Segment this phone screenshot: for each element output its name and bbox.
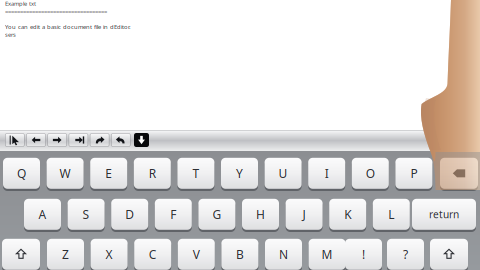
button[interactable]: J <box>286 197 323 232</box>
button[interactable]: Hide keyboard <box>133 132 149 147</box>
button[interactable]: W <box>47 156 84 191</box>
button[interactable]: Y <box>221 156 258 191</box>
staticText: ? <box>403 246 408 262</box>
staticText: W <box>60 165 71 181</box>
button[interactable]: E <box>90 156 127 191</box>
button[interactable]: Redo <box>90 133 110 147</box>
staticText: M <box>322 246 333 262</box>
button[interactable]: return <box>412 197 476 232</box>
button[interactable]: T <box>177 156 214 191</box>
button[interactable]: Move left <box>26 133 46 147</box>
staticText: V <box>193 246 200 262</box>
button[interactable]: I <box>308 156 345 191</box>
button[interactable]: Z <box>47 237 84 270</box>
staticText: F <box>170 206 176 222</box>
staticText: K <box>344 206 351 222</box>
button[interactable]: N <box>265 237 302 270</box>
staticText: O <box>366 165 375 181</box>
button[interactable]: Select text <box>5 133 25 147</box>
button[interactable]: D <box>111 197 148 232</box>
button[interactable]: X <box>91 237 128 270</box>
button[interactable]: S <box>68 197 105 232</box>
staticText: ================================== <box>5 8 107 15</box>
button[interactable]: Undo <box>111 133 131 147</box>
staticText: Z <box>62 246 69 262</box>
staticText: T <box>192 165 199 181</box>
staticText: Q <box>17 165 26 181</box>
staticText: C <box>149 246 157 262</box>
staticText: You can edit a basic document file in dE… <box>5 23 131 31</box>
button[interactable]: Jump to end <box>68 133 88 147</box>
staticText: Example txt <box>5 0 36 8</box>
staticText: I <box>325 165 329 181</box>
staticText: return <box>429 207 459 221</box>
staticText: D <box>125 206 134 222</box>
button[interactable]: L <box>373 197 410 232</box>
staticText: E <box>105 165 112 181</box>
button[interactable]: Q <box>3 156 40 191</box>
staticText: J <box>303 206 306 222</box>
staticText: sers <box>5 31 16 38</box>
staticText: L <box>388 206 394 222</box>
button[interactable]: M <box>309 237 346 270</box>
button[interactable]: Shift <box>2 237 40 270</box>
button[interactable]: C <box>134 237 171 270</box>
button[interactable]: G <box>198 197 235 232</box>
staticText: U <box>279 165 288 181</box>
button[interactable]: B <box>221 237 258 270</box>
button[interactable]: K <box>329 197 366 232</box>
button[interactable]: U <box>265 156 302 191</box>
button[interactable]: O <box>352 156 389 191</box>
button[interactable]: P <box>395 156 432 191</box>
staticText: ! <box>362 246 365 262</box>
staticText: N <box>279 246 288 262</box>
button[interactable]: A <box>24 197 61 232</box>
staticText: X <box>106 246 113 262</box>
button[interactable]: Move right <box>47 133 67 147</box>
staticText: R <box>149 165 156 181</box>
staticText: B <box>236 246 244 262</box>
button[interactable]: H <box>242 197 279 232</box>
button[interactable]: Shift <box>430 237 468 270</box>
staticText: G <box>212 206 221 222</box>
staticText: A <box>38 206 46 222</box>
button[interactable]: Delete <box>440 156 478 191</box>
staticText: S <box>83 206 90 222</box>
staticText: Y <box>236 165 243 181</box>
button[interactable]: R <box>134 156 171 191</box>
button[interactable]: ! <box>345 237 382 270</box>
staticText: P <box>410 165 417 181</box>
button[interactable]: F <box>155 197 192 232</box>
staticText: H <box>256 206 265 222</box>
button[interactable]: V <box>178 237 215 270</box>
button[interactable]: ? <box>387 237 424 270</box>
